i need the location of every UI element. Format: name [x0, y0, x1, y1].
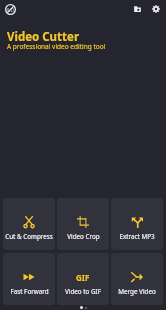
button[interactable]: Extract MP3 [111, 198, 163, 250]
button[interactable]: Fast Forward [3, 253, 55, 305]
button[interactable]: GIF [57, 253, 109, 305]
button[interactable]: Video Crop [57, 198, 109, 250]
staticText: Video Cutter [7, 29, 80, 45]
button[interactable]: Settings [147, 0, 165, 18]
button[interactable]: My files [129, 0, 147, 18]
staticText: Video to GIF [65, 287, 101, 296]
staticText: Fast Forward [10, 287, 49, 296]
staticText: Video Crop [67, 232, 100, 241]
button[interactable]: Remove ads [2, 1, 18, 17]
staticText: Cut & Compress [5, 232, 53, 241]
staticText: Extract MP3 [119, 232, 155, 241]
staticText: Merge Video [118, 287, 156, 296]
button[interactable]: Merge Video [111, 253, 163, 305]
staticText: GIF [76, 272, 90, 283]
staticText: A professional video editing tool [7, 42, 106, 51]
button[interactable]: Cut & Compress [3, 198, 55, 250]
staticText: AD [6, 6, 15, 14]
